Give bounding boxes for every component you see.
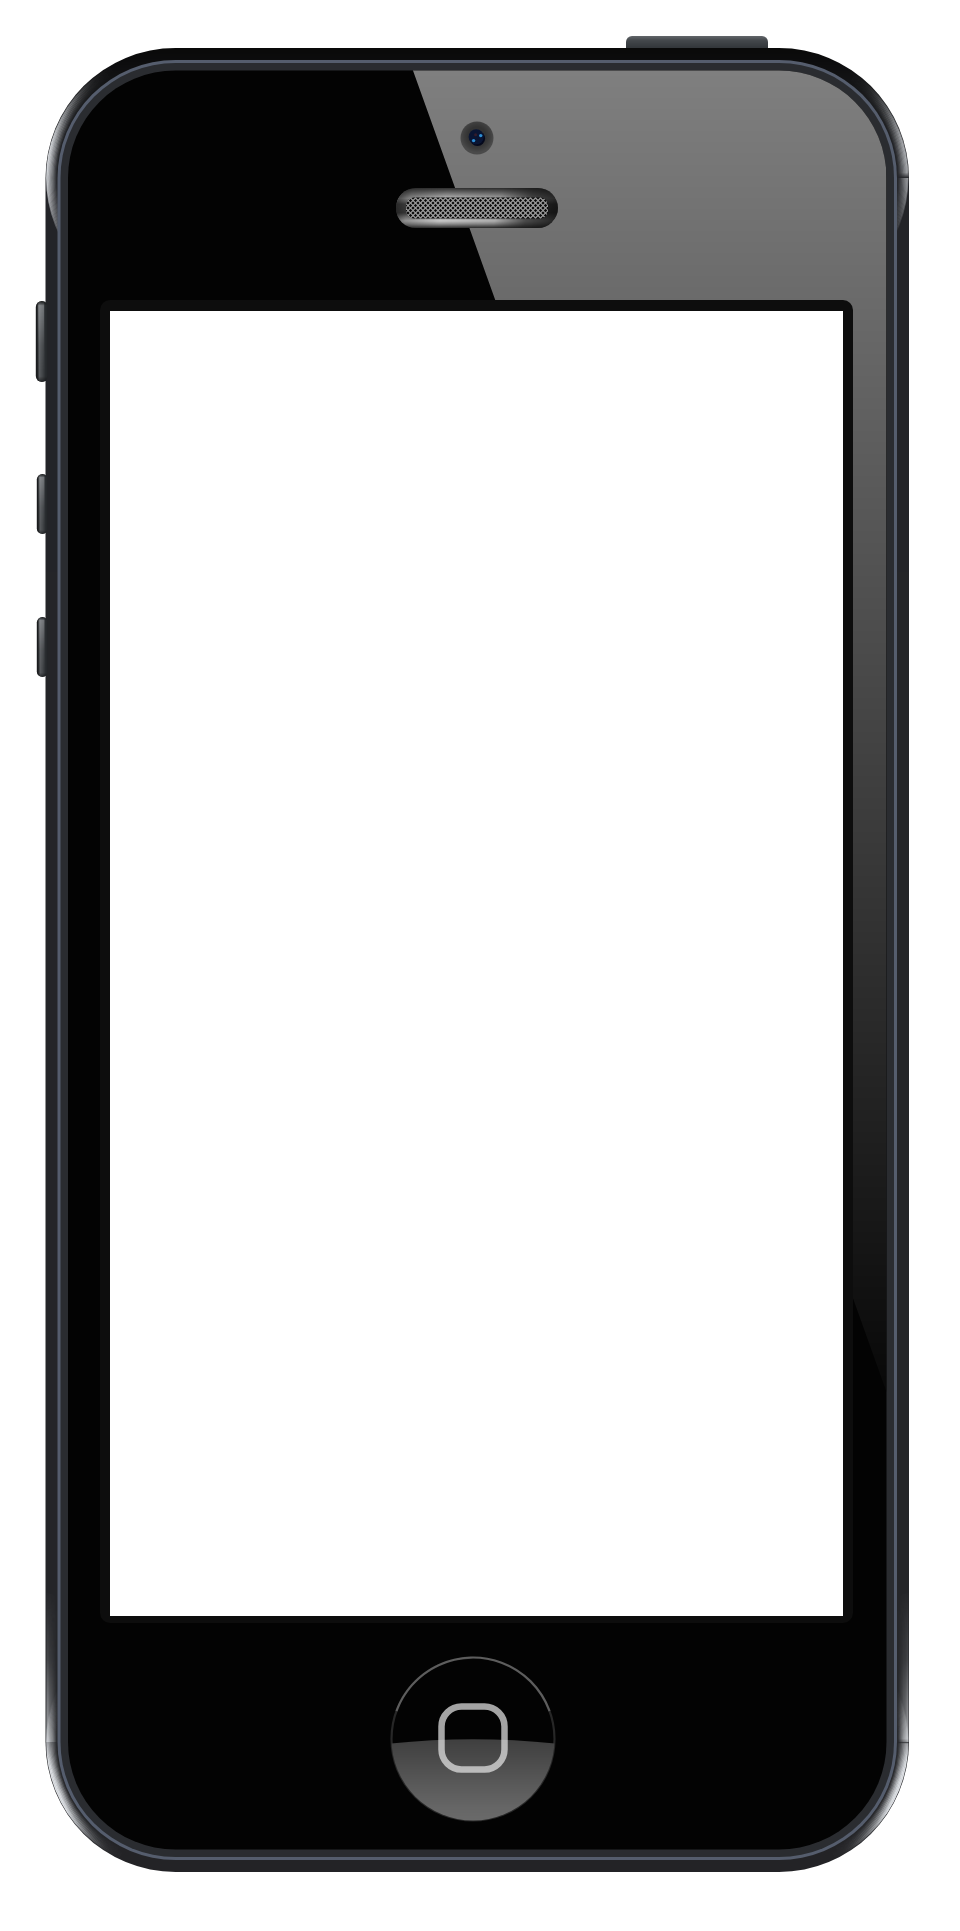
button[interactable]: Ring silent switch	[34, 299, 48, 384]
button[interactable]: Home button	[392, 1658, 555, 1821]
button[interactable]: Power button	[624, 34, 770, 58]
button[interactable]: Volume down	[35, 615, 48, 679]
button[interactable]: Volume up	[35, 472, 48, 536]
